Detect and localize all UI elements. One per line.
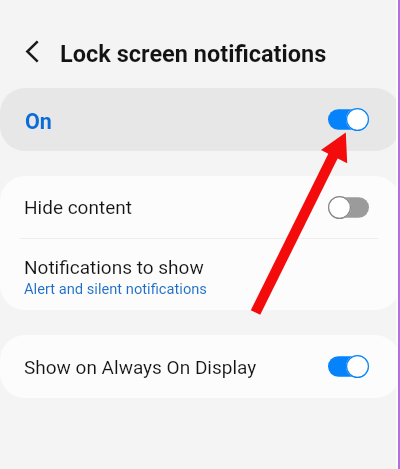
button[interactable]: On bbox=[0, 88, 400, 151]
button[interactable]: Hide content bbox=[0, 176, 400, 238]
button[interactable]: Back bbox=[12, 33, 53, 74]
button[interactable]: Notifications to show bbox=[0, 239, 400, 310]
staticText: Notifications to show bbox=[24, 256, 204, 278]
button[interactable]: Show on Always On Display bbox=[0, 335, 400, 398]
staticText: On bbox=[25, 109, 52, 134]
staticText: Alert and silent notifications bbox=[24, 280, 207, 297]
staticText: Hide content bbox=[24, 196, 328, 218]
staticText: Lock screen notifications bbox=[60, 40, 327, 68]
staticText: Show on Always On Display bbox=[24, 356, 257, 378]
